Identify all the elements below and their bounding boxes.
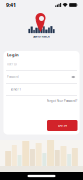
staticText: LOG IN: [58, 124, 67, 127]
staticText: 9:41: [6, 1, 16, 9]
staticText: Server 1: [10, 88, 21, 91]
button[interactable]: Server 1: [3, 84, 79, 95]
button[interactable]: Forgot Your Password?: [47, 98, 79, 104]
staticText: Password: [7, 75, 19, 79]
button[interactable]: LOG IN: [47, 120, 77, 131]
staticText: Forgot Your Password?: [47, 99, 77, 103]
staticText: SEMOTRACK: [33, 35, 50, 38]
staticText: User ID: [7, 62, 17, 66]
button[interactable]: Show password: [71, 75, 75, 79]
staticText: Login: [7, 52, 19, 57]
